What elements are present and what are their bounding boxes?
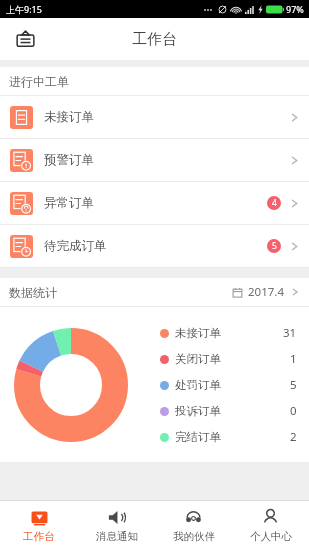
button[interactable]: 异常订单	[0, 182, 309, 224]
staticText: 97%	[286, 3, 304, 15]
staticText: 预警订单	[44, 152, 94, 168]
staticText: 待完成订单	[44, 238, 107, 254]
staticText: 4	[272, 197, 277, 209]
button[interactable]: 未接订单	[0, 96, 309, 138]
staticText: 31	[283, 325, 297, 341]
button[interactable]: 个人中心	[232, 501, 309, 550]
staticText: 5	[272, 240, 277, 252]
button[interactable]: 2017.4	[232, 284, 300, 300]
staticText: 2017.4	[248, 284, 284, 300]
staticText: 个人中心	[250, 530, 292, 543]
staticText: 处罚订单	[175, 378, 221, 392]
staticText: 工作台	[23, 530, 55, 543]
button[interactable]: Workbench menu	[9, 23, 41, 55]
button[interactable]: 消息通知	[78, 501, 155, 550]
button[interactable]: 预警订单	[0, 139, 309, 181]
staticText: 2	[290, 429, 297, 445]
staticText: 上午9:15	[6, 3, 42, 15]
staticText: 0	[290, 403, 297, 419]
staticText: 进行中工单	[9, 74, 69, 89]
staticText: 未接订单	[175, 326, 221, 340]
staticText: 关闭订单	[175, 352, 221, 366]
staticText: 消息通知	[96, 530, 138, 543]
staticText: 异常订单	[44, 195, 94, 211]
staticText: 5	[290, 377, 297, 393]
staticText: 数据统计	[9, 285, 57, 300]
staticText: 完结订单	[175, 430, 221, 444]
staticText: 投诉订单	[175, 404, 221, 418]
button[interactable]: 待完成订单	[0, 225, 309, 267]
staticText: 我的伙伴	[173, 530, 215, 543]
staticText: 工作台	[132, 30, 177, 49]
staticText: 未接订单	[44, 109, 94, 125]
button[interactable]: 我的伙伴	[155, 501, 232, 550]
staticText: 1	[290, 351, 297, 367]
button[interactable]: 工作台	[0, 501, 78, 550]
